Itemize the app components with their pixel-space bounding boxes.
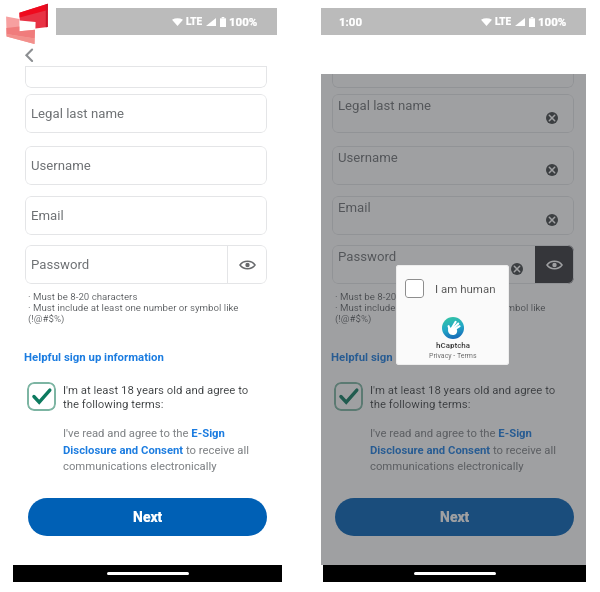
button[interactable]: Show password — [228, 245, 267, 284]
button[interactable] — [332, 74, 574, 88]
button[interactable]: Helpful sign up information — [331, 350, 471, 363]
staticText: Password — [31, 257, 90, 272]
button[interactable]: Email — [332, 196, 574, 235]
button[interactable]: Helpful sign up information — [24, 350, 164, 363]
staticText: I'm at least 18 years old and agree to t… — [63, 383, 278, 411]
staticText: Password — [338, 249, 397, 264]
button[interactable]: Next — [335, 498, 574, 536]
button[interactable]: Next — [28, 498, 267, 536]
staticText: LTE — [495, 16, 512, 28]
staticText: · Must include at least one number or sy… — [28, 302, 239, 313]
staticText: Username — [31, 158, 91, 173]
button[interactable]: Clear Username — [546, 164, 558, 176]
staticText: · Must include at least one number or sy… — [335, 302, 546, 313]
staticText: Privacy - Terms — [429, 352, 477, 360]
staticText: Helpful sign up information — [331, 350, 471, 363]
button[interactable]: Legal last name — [25, 94, 267, 133]
button[interactable]: I am human checkbox — [396, 265, 509, 365]
button[interactable] — [25, 66, 267, 88]
staticText: 100% — [229, 15, 258, 28]
staticText: Legal last name — [31, 106, 124, 121]
staticText: I'm at least 18 years old and agree to t… — [370, 383, 585, 411]
button[interactable]: I am at least 18 years old — [27, 382, 56, 411]
staticText: LTE — [186, 16, 203, 28]
staticText: hCaptcha — [436, 341, 471, 350]
button[interactable]: Username — [332, 146, 574, 185]
button[interactable]: Clear Legal last name — [546, 112, 558, 124]
staticText: Helpful sign up information — [24, 350, 164, 363]
button[interactable]: Show password — [535, 245, 574, 284]
staticText: Next — [133, 509, 163, 525]
button[interactable]: I am at least 18 years old — [334, 382, 363, 411]
button[interactable]: Email — [25, 196, 267, 235]
staticText: I am human — [435, 282, 496, 295]
staticText: · Must be 8-20 characters — [335, 291, 445, 302]
button[interactable]: Clear password — [511, 263, 523, 275]
staticText: Next — [440, 509, 470, 525]
staticText: · Must be 8-20 characters — [28, 291, 138, 302]
staticText: Username — [338, 150, 398, 165]
staticText: Email — [338, 200, 371, 215]
staticText: I've read and agree to the E-Sign Disclo… — [63, 427, 253, 472]
staticText: Legal last name — [338, 98, 431, 113]
staticText: I've read and agree to the E-Sign Disclo… — [370, 427, 560, 472]
button[interactable]: Username — [25, 146, 267, 185]
button[interactable]: Legal last name — [332, 94, 574, 133]
staticText: (!@#$%) — [335, 313, 372, 324]
staticText: Email — [31, 208, 64, 223]
button[interactable]: Back — [18, 43, 44, 69]
button[interactable]: Clear Email — [546, 214, 558, 226]
staticText: (!@#$%) — [28, 313, 65, 324]
button[interactable]: I am human checkbox — [405, 279, 424, 298]
staticText: 1:00 — [339, 15, 363, 28]
staticText: 100% — [538, 15, 567, 28]
